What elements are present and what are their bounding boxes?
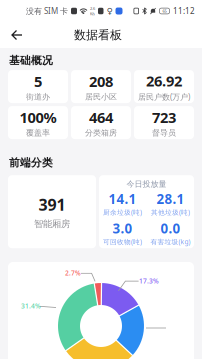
staticText: 智能厢房 [34,218,70,230]
button[interactable]: Back [0,27,30,43]
staticText: 464 [89,107,113,127]
staticText: 可回收物(吨) [103,237,142,246]
staticText: 2.6 [90,6,95,11]
staticText: 居民户数(万户) [138,91,190,102]
staticText: 723 [152,107,176,127]
staticText: 厨余垃圾(吨) [103,208,142,217]
staticText: 100% [19,107,56,127]
staticText: 3.0 [112,220,132,237]
staticText: 0.0 [160,220,180,237]
staticText: 14.1 [108,190,136,208]
staticText: 今日投放量 [126,179,166,189]
staticText: 基础概况 [9,54,53,67]
staticText: ♀ [106,6,112,16]
staticText: 17.3% [139,277,159,285]
staticText: 街道办 [26,92,50,102]
staticText: 5 [34,71,42,91]
staticText: 391 [38,194,65,215]
staticText: 其他垃圾(吨) [151,208,190,217]
staticText: 208 [89,71,113,91]
staticText: 覆盖率 [26,128,50,138]
staticText: 28.1 [156,190,184,208]
staticText: 31.4% [21,302,41,310]
staticText: 前端分类 [9,156,53,169]
staticText: 有害垃圾(kg) [150,237,190,246]
staticText: 数据看板 [74,28,122,42]
staticText: 督导员 [152,128,176,138]
staticText: 26.92 [146,71,182,91]
staticText: 没有 SIM 卡 [26,6,68,16]
staticText: 65 [162,8,166,14]
staticText: 居民小区 [85,92,117,102]
staticText: 11:12 [173,6,195,16]
staticText: K/s [90,11,95,16]
staticText: 分类箱房 [85,128,117,138]
staticText: 2.7% [65,269,81,277]
